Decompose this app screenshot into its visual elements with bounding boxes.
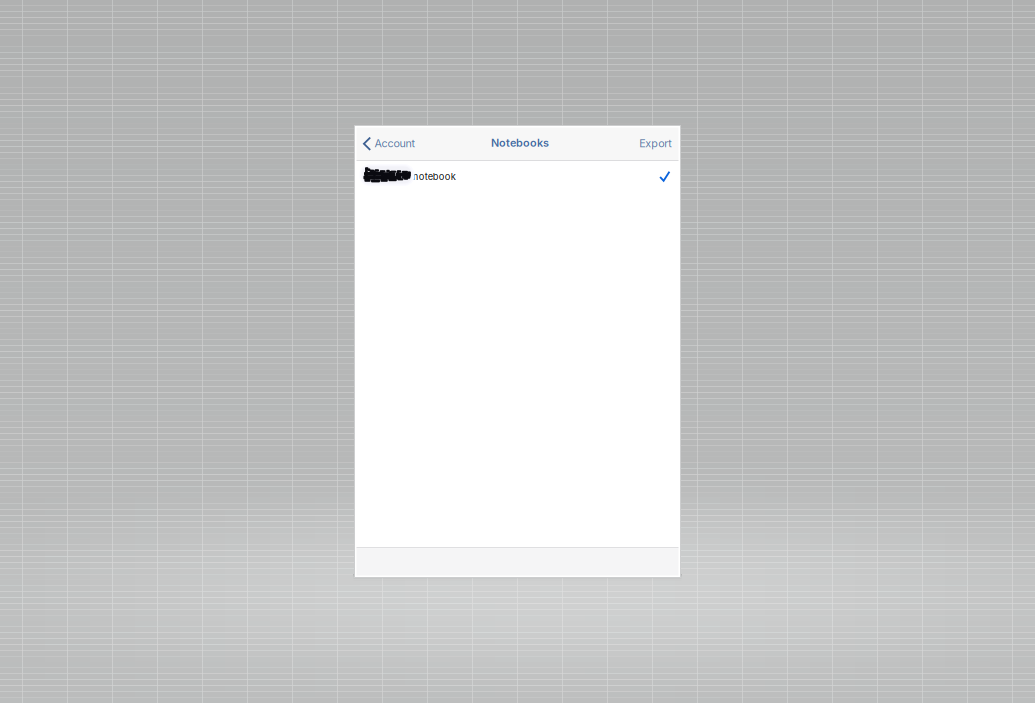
button[interactable]: notebook (356, 161, 678, 187)
staticText: Export (639, 137, 672, 150)
button[interactable]: Export (629, 127, 678, 160)
staticText: Notebooks (491, 136, 549, 149)
button[interactable]: Account (356, 127, 423, 160)
staticText: notebook (413, 171, 456, 182)
staticText: Account (374, 137, 415, 150)
